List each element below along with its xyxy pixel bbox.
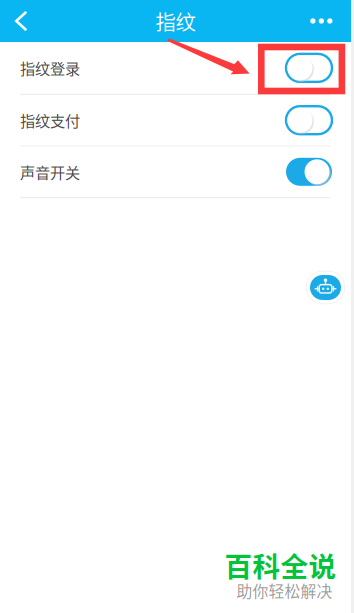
staticText: 指纹: [155, 6, 195, 36]
staticText: 助你轻松解决: [236, 579, 332, 602]
staticText: 指纹支付: [20, 109, 80, 131]
button[interactable]: 声音开关: [0, 147, 351, 198]
button[interactable]: Back: [0, 0, 40, 42]
staticText: 声音开关: [20, 161, 80, 183]
button[interactable]: Chat assistant: [305, 270, 345, 304]
staticText: 指纹登录: [20, 57, 80, 79]
button[interactable]: More options: [298, 0, 351, 42]
button[interactable]: 指纹登录: [0, 42, 351, 95]
button[interactable]: 指纹支付: [0, 95, 351, 147]
staticText: 百科全说: [224, 545, 336, 585]
